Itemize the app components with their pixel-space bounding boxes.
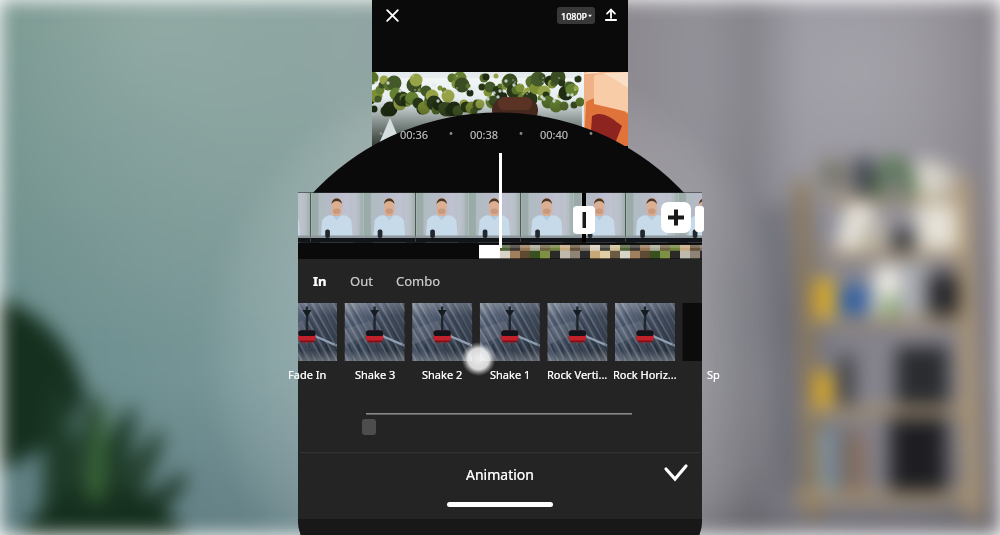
staticText: Fade In — [288, 367, 327, 382]
button[interactable]: Animation — [440, 459, 560, 489]
staticText: Shake 1 — [490, 367, 531, 382]
staticText: Out — [350, 272, 373, 290]
button[interactable]: Out — [331, 270, 391, 292]
staticText: In — [313, 272, 327, 290]
staticText: Combo — [396, 272, 441, 290]
staticText: Sp — [707, 367, 720, 382]
button[interactable]: Combo — [388, 270, 448, 292]
staticText: 1080P — [561, 10, 588, 22]
button[interactable]: Export — [602, 6, 620, 24]
button[interactable]: 1080P — [557, 7, 595, 24]
staticText: Shake 2 — [422, 367, 463, 382]
staticText: 00:36 — [400, 127, 429, 142]
button[interactable]: Close — [383, 6, 402, 25]
staticText: 00:40 — [540, 127, 569, 142]
button[interactable]: In — [290, 270, 350, 292]
staticText: Rock Verti... — [547, 367, 608, 382]
staticText: Animation — [466, 465, 534, 484]
staticText: Shake 3 — [355, 367, 396, 382]
staticText: 00:38 — [470, 127, 499, 142]
staticText: Rock Horiz... — [613, 367, 677, 382]
